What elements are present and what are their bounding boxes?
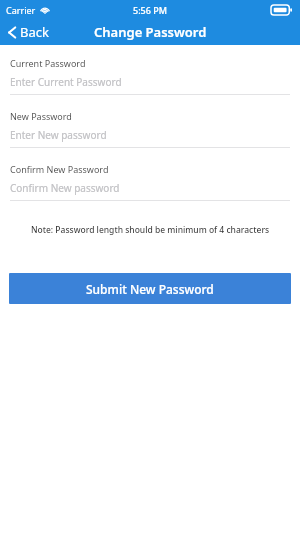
staticText: 5:56 PM [133, 4, 167, 16]
button[interactable]: Back [0, 19, 61, 45]
staticText: Change Password [94, 23, 207, 41]
staticText: Confirm New Password [10, 163, 109, 175]
other: Wi-Fi signal [40, 6, 50, 14]
button[interactable]: Submit New Password [9, 273, 291, 304]
staticText: Submit New Password [86, 281, 214, 297]
staticText: Current Password [10, 57, 86, 69]
staticText: Enter Current Password [10, 75, 122, 89]
staticText: New Password [10, 110, 72, 122]
staticText: Enter New password [10, 128, 107, 142]
staticText: Back [20, 23, 49, 41]
staticText: Note: Password length should be minimum … [14, 224, 286, 236]
other: Battery full [271, 5, 292, 15]
button[interactable]: New Password [0, 110, 300, 148]
button[interactable]: Current Password [0, 57, 300, 95]
button[interactable]: Confirm New Password [0, 163, 300, 201]
staticText: Confirm New password [10, 181, 120, 195]
staticText: Carrier [6, 4, 36, 16]
